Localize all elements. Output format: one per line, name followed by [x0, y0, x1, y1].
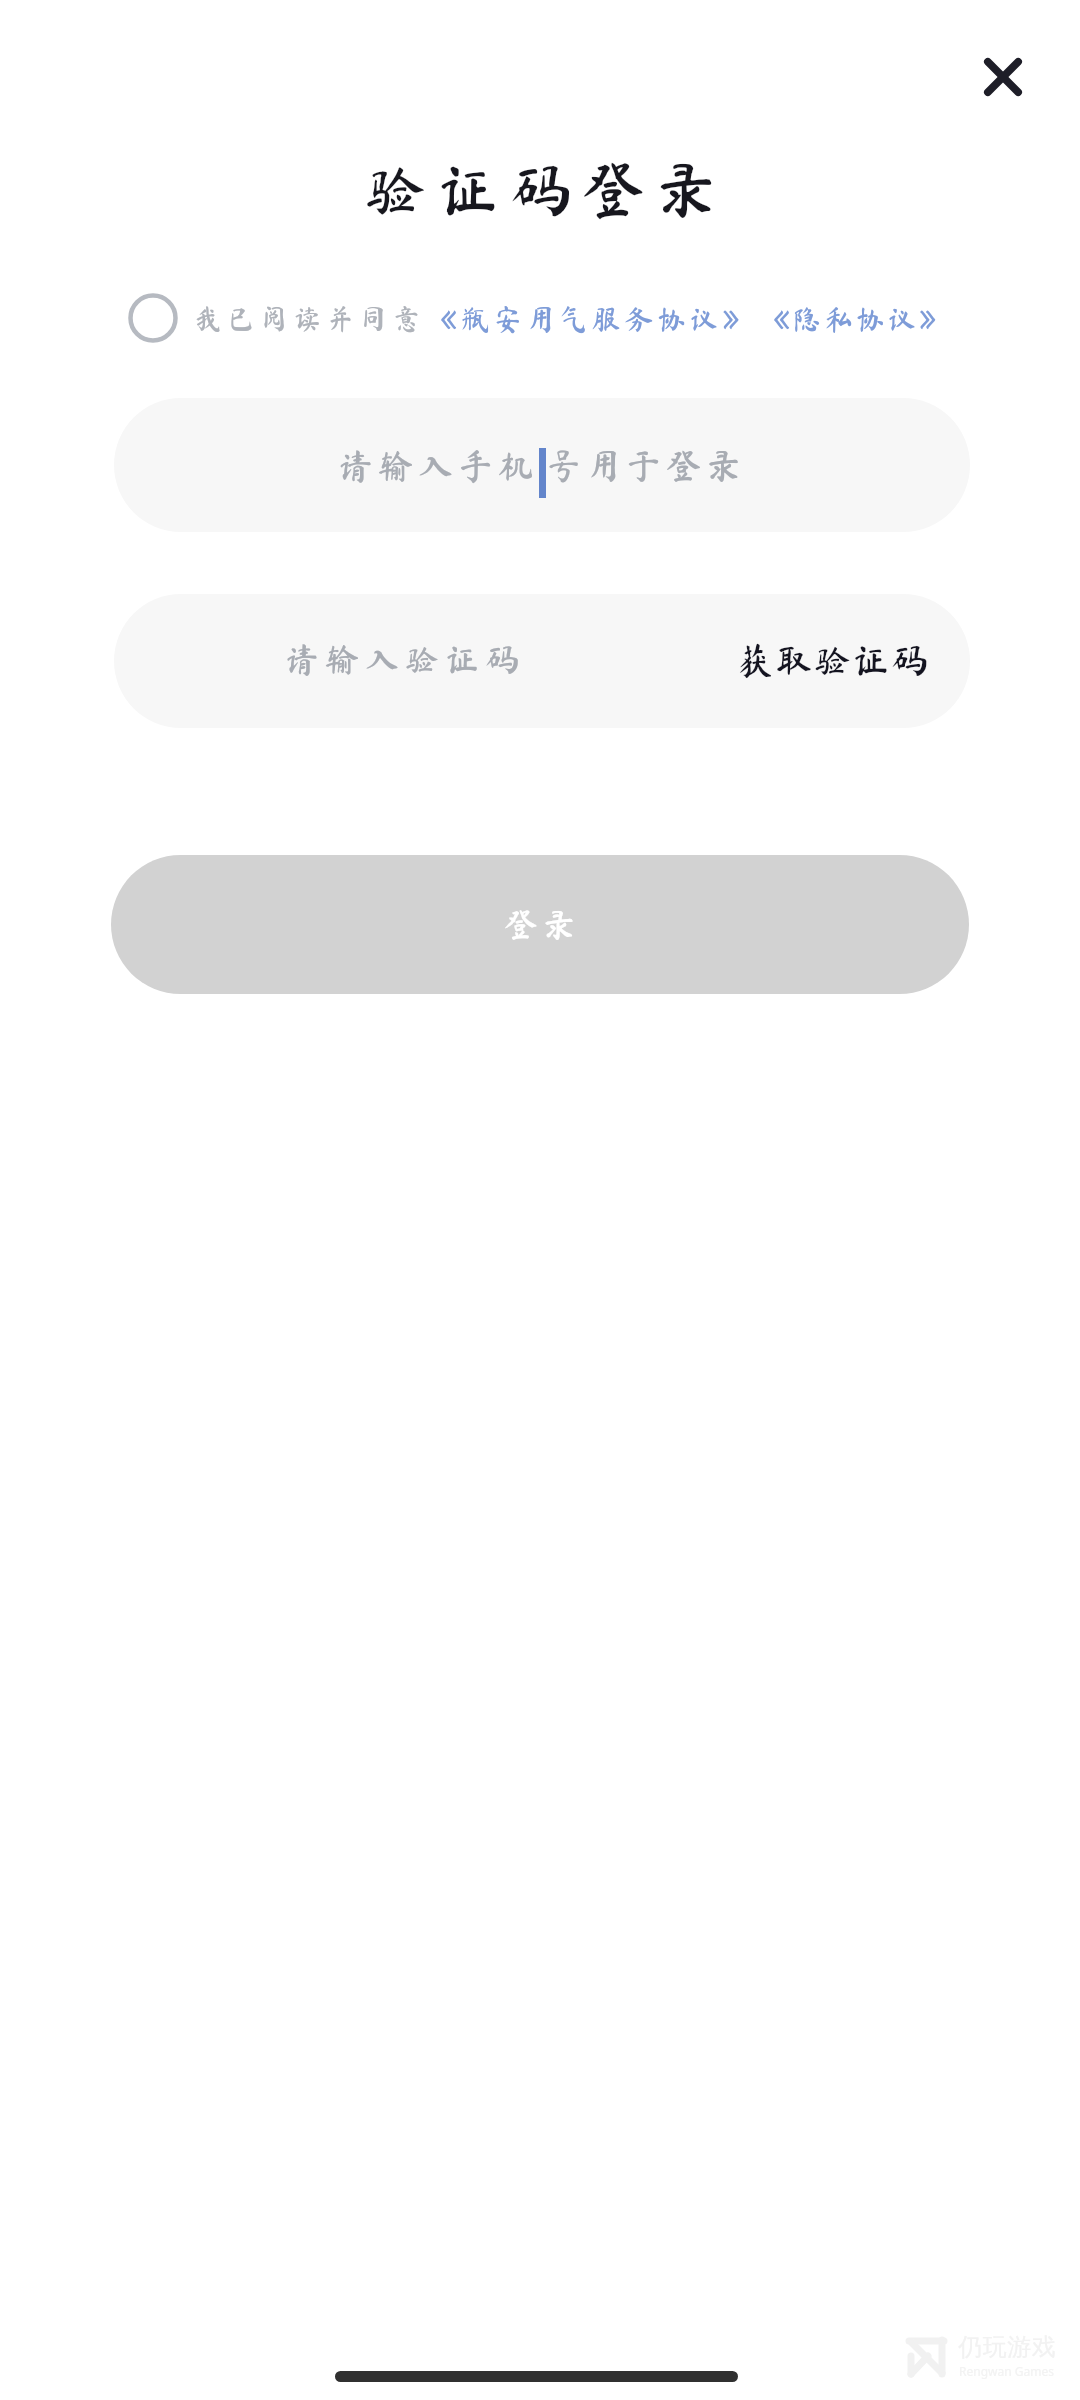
button[interactable]: 我已阅读并同意	[0, 280, 1080, 356]
staticText: 获取验证码	[737, 641, 930, 678]
button[interactable]: 《瓶安用气服务协议》	[428, 304, 756, 333]
staticText: 号用于登录	[546, 448, 747, 483]
staticText: 登录	[502, 908, 578, 941]
staticText: Rengwan Games	[959, 2363, 1054, 2379]
button[interactable]: 登录	[111, 855, 969, 994]
button[interactable]: 请输入验证码	[114, 594, 734, 728]
staticText: 请输入验证码	[285, 642, 525, 676]
staticText: 仍玩游戏	[958, 2332, 1056, 2362]
button[interactable]: 获取验证码	[701, 594, 970, 728]
staticText: 验证码登录	[6, 158, 1080, 220]
button[interactable]: Close	[943, 17, 1063, 137]
staticText: 请输入手机	[338, 448, 539, 483]
button[interactable]: 《隐私协议》	[761, 304, 951, 333]
staticText: 我已阅读并同意	[194, 304, 426, 332]
button[interactable]: 请输入手机	[114, 398, 970, 532]
